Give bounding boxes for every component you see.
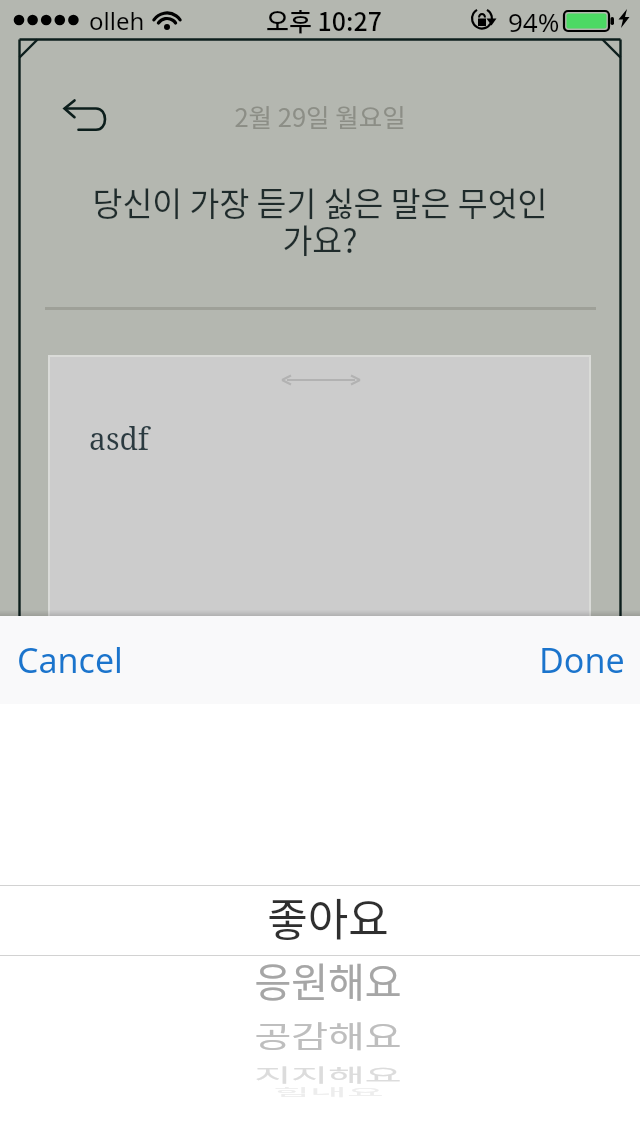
staticText: 공감해요	[254, 1014, 402, 1056]
button[interactable]: Done	[539, 637, 625, 683]
staticText: 2월 29일 월요일	[0, 97, 640, 134]
staticText: 좋아요	[267, 885, 389, 949]
button[interactable]: 응원해요	[8, 948, 640, 1012]
staticText: 94%	[508, 4, 560, 39]
staticText: 지지해요	[254, 1061, 402, 1087]
staticText: 힘내요	[273, 1084, 384, 1100]
staticText: Cancel	[17, 637, 123, 683]
button[interactable]: 힘내요	[8, 1060, 640, 1124]
staticText: 당신이 가장 듣기 싫은 말은 무엇인 가요?	[0, 178, 640, 262]
staticText: Done	[539, 637, 625, 683]
button[interactable]: Cancel	[17, 637, 123, 683]
staticText: 오후 10:27	[4, 2, 640, 38]
staticText: olleh	[89, 4, 145, 37]
staticText: asdf	[89, 418, 149, 459]
button[interactable]: 공감해요	[8, 1003, 640, 1067]
staticText: 응원해요	[254, 951, 402, 1009]
button[interactable]: Back	[52, 88, 122, 144]
button[interactable]: 지지해요	[8, 1042, 640, 1106]
button[interactable]: 좋아요	[8, 885, 640, 949]
